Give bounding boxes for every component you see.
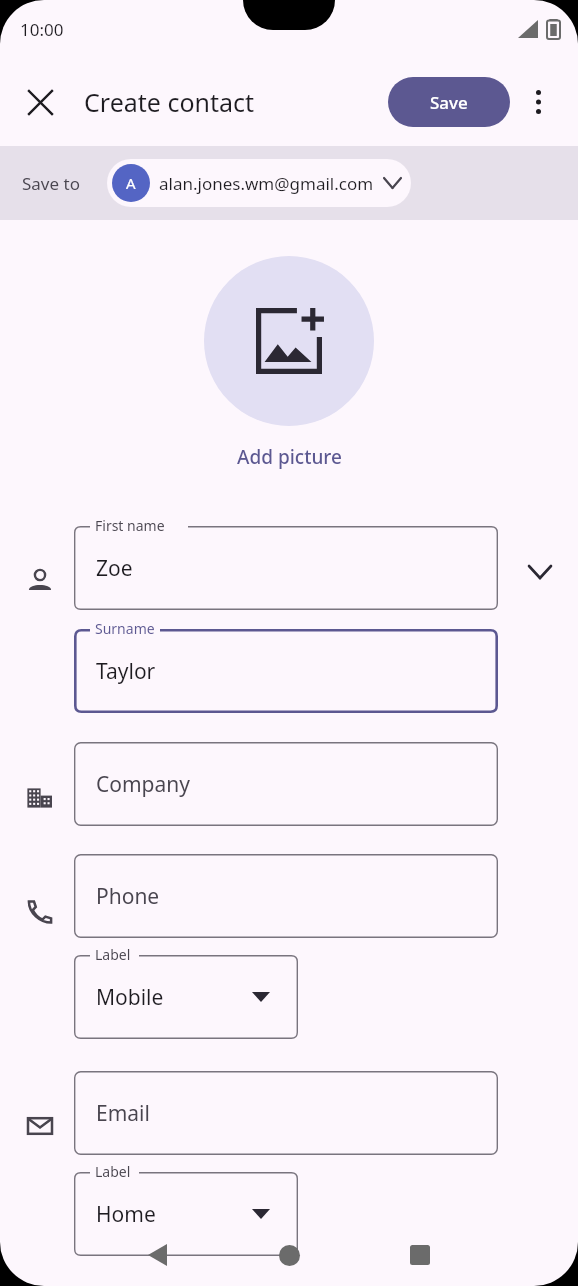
staticText: First name [95, 516, 165, 535]
button[interactable]: Expand name fields [518, 550, 562, 594]
button[interactable]: Surname [74, 629, 498, 713]
button[interactable]: Add picture [237, 444, 342, 470]
button[interactable]: First name [74, 526, 498, 610]
staticText: Label [95, 1162, 131, 1181]
staticText: Save to [22, 172, 80, 195]
staticText: Label [95, 945, 131, 964]
staticText: Company [96, 770, 190, 799]
staticText: Create contact [84, 85, 255, 119]
button[interactable]: Label [74, 955, 298, 1039]
button[interactable]: Back [134, 1232, 180, 1278]
button[interactable]: Phone [74, 854, 498, 938]
button[interactable]: Email [74, 1071, 498, 1155]
staticText: A [126, 173, 136, 193]
button[interactable]: Company [74, 742, 498, 826]
staticText: Mobile [96, 983, 164, 1012]
staticText: Save [430, 91, 468, 114]
button[interactable]: A [107, 159, 411, 207]
button[interactable]: Add picture [204, 256, 374, 426]
staticText: Home [96, 1200, 156, 1229]
button[interactable]: More options [514, 78, 562, 126]
staticText: 10:00 [20, 18, 64, 41]
staticText: Surname [95, 619, 155, 638]
staticText: Taylor [96, 657, 156, 686]
staticText: Phone [96, 882, 160, 911]
button[interactable]: Save [388, 77, 510, 127]
button[interactable]: Label [74, 1172, 298, 1256]
button[interactable]: Close [14, 76, 66, 128]
button[interactable]: Recent apps [397, 1232, 443, 1278]
staticText: alan.jones.wm@gmail.com [159, 172, 374, 195]
staticText: Email [96, 1099, 150, 1128]
staticText: Zoe [96, 554, 133, 583]
button[interactable]: Home [266, 1232, 312, 1278]
